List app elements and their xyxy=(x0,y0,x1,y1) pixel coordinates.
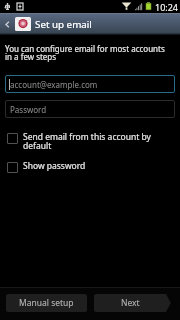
staticText: 10:24 xyxy=(155,1,179,13)
staticText: Send email from this account by default xyxy=(23,131,151,152)
button[interactable]: account@example.com xyxy=(5,75,175,93)
button[interactable]: Navigate up xyxy=(0,13,15,35)
staticText: Show password xyxy=(23,160,86,172)
staticText: Manual setup xyxy=(19,297,74,309)
staticText: Set up email xyxy=(35,18,92,31)
button[interactable]: Show password xyxy=(7,160,175,172)
staticText: account@example.com xyxy=(10,79,98,90)
button[interactable]: Manual setup xyxy=(6,294,87,312)
button[interactable]: Next xyxy=(94,294,171,312)
button[interactable]: Password xyxy=(5,100,175,118)
staticText: Next xyxy=(121,297,140,309)
button[interactable]: Send email from this account by default xyxy=(7,131,175,152)
staticText: You can configure email for most account… xyxy=(5,43,165,62)
staticText: Password xyxy=(10,104,47,115)
